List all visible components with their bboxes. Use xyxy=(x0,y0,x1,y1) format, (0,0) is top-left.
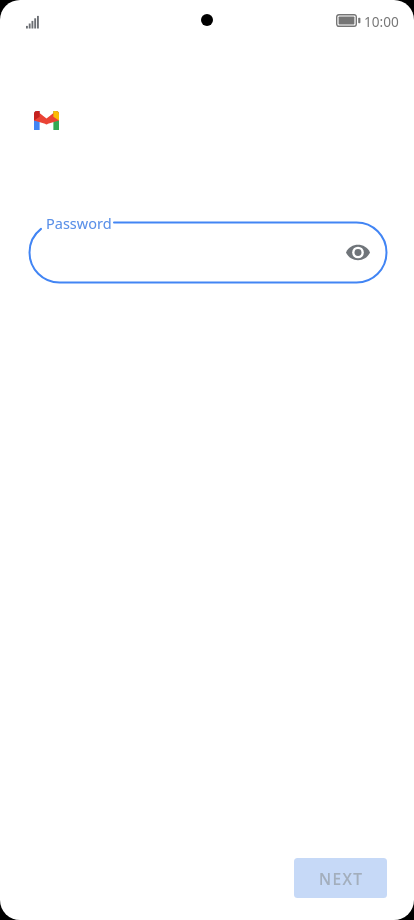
staticText: Password xyxy=(46,213,112,233)
button[interactable]: NEXT xyxy=(294,858,387,898)
button[interactable]: Password xyxy=(29,222,387,283)
staticText: NEXT xyxy=(319,868,364,889)
button[interactable]: Show password xyxy=(334,228,382,276)
staticText: 10:00 xyxy=(364,12,399,31)
